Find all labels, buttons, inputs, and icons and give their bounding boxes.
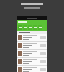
button[interactable]: Action [17, 34, 47, 41]
button[interactable]: Action [17, 66, 47, 72]
button[interactable]: Action [17, 42, 47, 49]
button[interactable] [18, 25, 22, 30]
button[interactable]: Action [17, 50, 47, 57]
button[interactable]: Action [17, 58, 47, 65]
button[interactable] [38, 25, 42, 30]
button[interactable] [23, 25, 27, 30]
button[interactable] [33, 25, 37, 30]
button[interactable] [28, 25, 32, 30]
button[interactable] [17, 20, 47, 31]
